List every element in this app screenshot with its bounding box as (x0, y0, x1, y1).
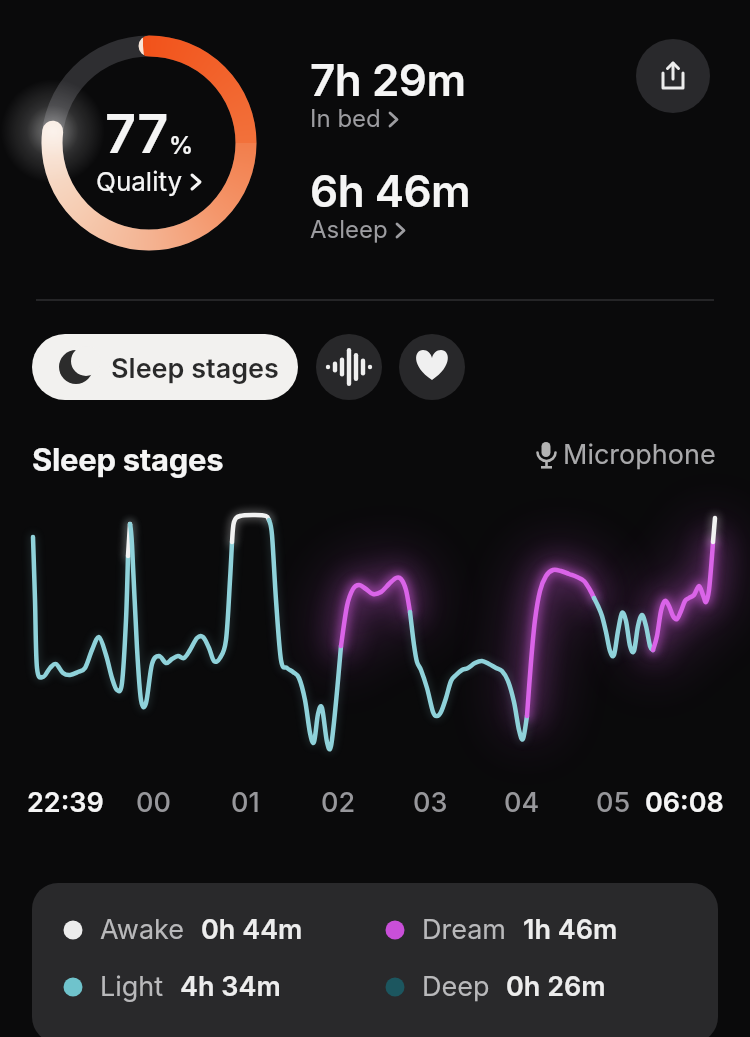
staticText: 04 (504, 786, 540, 819)
staticText: 00 (136, 786, 171, 819)
button[interactable]: Awake (32, 883, 718, 1037)
staticText: % (169, 131, 194, 160)
staticText: 02 (321, 786, 356, 819)
staticText: In bed (310, 104, 381, 133)
staticText: Sleep stages (32, 441, 224, 479)
staticText: 05 (596, 786, 631, 819)
staticText: 03 (413, 786, 448, 819)
staticText: 06:08 (645, 786, 724, 819)
button[interactable]: 77 (41, 101, 257, 205)
button[interactable] (636, 39, 710, 113)
button[interactable]: Sleep stages (32, 334, 298, 400)
button[interactable] (316, 334, 382, 400)
staticText: 7h 29m (310, 53, 466, 106)
staticText: 01 (231, 786, 260, 819)
button[interactable]: Asleep (310, 215, 408, 244)
button[interactable]: Microphone (535, 438, 716, 471)
staticText: 6h 46m (310, 164, 471, 217)
staticText: 22:39 (27, 786, 104, 819)
staticText: 4h 34m (180, 970, 281, 1003)
staticText: Light (100, 970, 164, 1003)
staticText: 0h 26m (506, 970, 606, 1003)
staticText: 1h 46m (523, 913, 618, 946)
staticText: Deep (422, 970, 490, 1003)
staticText: Awake (100, 913, 185, 946)
staticText: Sleep stages (111, 352, 279, 385)
staticText: Dream (422, 913, 507, 946)
staticText: Microphone (563, 438, 716, 471)
staticText: Quality (96, 166, 183, 197)
button[interactable] (399, 334, 465, 400)
staticText: Asleep (310, 215, 388, 244)
button[interactable]: In bed (310, 104, 401, 133)
staticText: 77 (105, 101, 169, 166)
staticText: 0h 44m (201, 913, 303, 946)
